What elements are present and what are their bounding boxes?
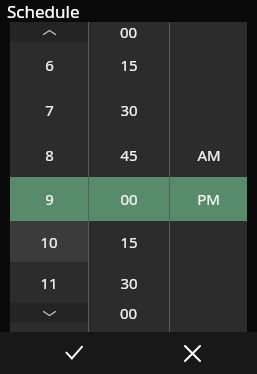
staticText: 30 <box>120 100 138 120</box>
button[interactable]: 9 <box>10 177 88 221</box>
staticText: 10 <box>40 232 58 252</box>
button[interactable]: 7 <box>10 87 88 132</box>
button[interactable]: 15 <box>89 221 169 262</box>
button[interactable]: 6 <box>10 42 88 87</box>
button[interactable]: 00 <box>89 303 169 323</box>
staticText: 6 <box>45 55 54 75</box>
button[interactable]: Next hours <box>10 303 88 323</box>
staticText: 7 <box>45 100 54 120</box>
staticText: AM <box>197 145 221 165</box>
button[interactable]: 15 <box>89 42 169 87</box>
button[interactable]: 10 <box>10 221 88 262</box>
staticText: PM <box>197 189 220 209</box>
staticText: 30 <box>120 273 138 293</box>
staticText: 9 <box>45 189 54 209</box>
staticText: 8 <box>45 145 54 165</box>
button[interactable]: Cancel <box>170 332 214 374</box>
staticText: 15 <box>120 55 138 75</box>
button[interactable]: 00 <box>89 177 169 221</box>
button[interactable]: 00 <box>89 22 169 42</box>
staticText: 00 <box>120 22 138 42</box>
staticText: 00 <box>120 303 138 323</box>
button[interactable]: Previous hours <box>10 22 88 42</box>
staticText: 15 <box>120 232 138 252</box>
button[interactable]: PM <box>170 177 247 221</box>
staticText: Schedule <box>7 0 80 23</box>
button[interactable]: 45 <box>89 132 169 177</box>
staticText: 00 <box>120 189 138 209</box>
staticText: 45 <box>120 145 138 165</box>
staticText: 11 <box>40 273 58 293</box>
button[interactable]: 8 <box>10 132 88 177</box>
button[interactable]: 11 <box>10 262 88 303</box>
button[interactable]: 30 <box>89 87 169 132</box>
button[interactable]: AM <box>170 132 247 177</box>
button[interactable]: 30 <box>89 262 169 303</box>
button[interactable]: Accept <box>52 332 96 374</box>
